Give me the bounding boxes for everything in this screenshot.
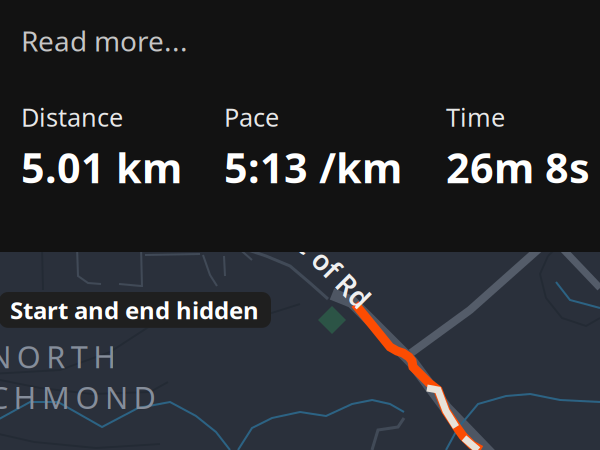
staticText: e of Rd (287, 252, 380, 289)
staticText: 26m 8s (446, 140, 590, 195)
staticText: Read more... (21, 22, 188, 59)
staticText: Distance (21, 100, 123, 134)
staticText: Pace (224, 100, 279, 134)
staticText: RICHMOND (0, 377, 155, 417)
button[interactable]: Start and end hidden (0, 292, 271, 328)
staticText: NORTH (0, 336, 116, 377)
button[interactable]: Read more... (0, 0, 212, 67)
staticText: Time (446, 100, 505, 134)
staticText: 5:13 /km (224, 140, 402, 195)
staticText: 5.01 km (21, 140, 182, 195)
staticText: Start and end hidden (10, 294, 259, 326)
